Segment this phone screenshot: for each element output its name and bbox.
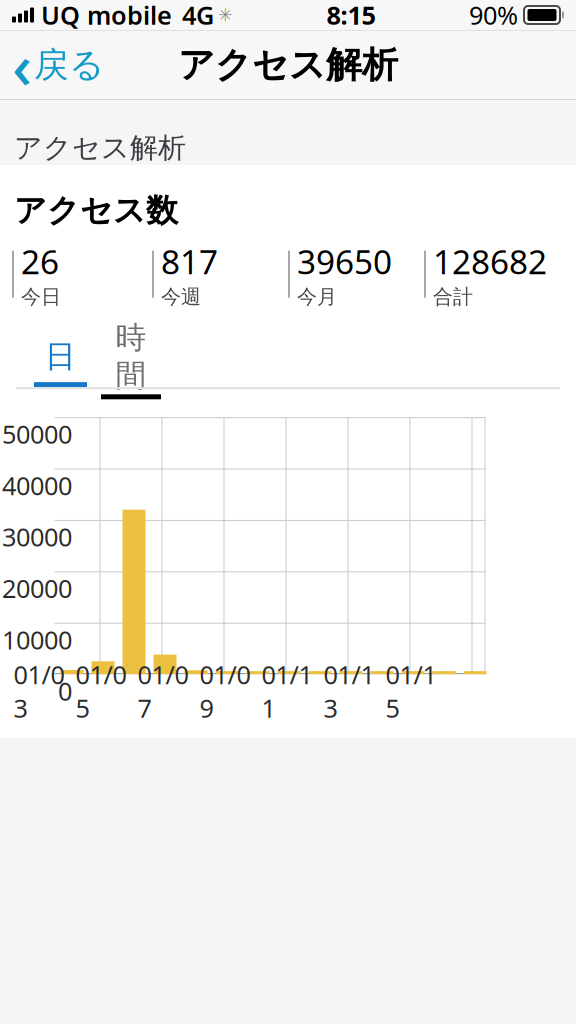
button[interactable]: 日 [34, 331, 87, 387]
staticText: 01/05 [75, 657, 126, 725]
staticText: 128682 [433, 239, 547, 284]
button[interactable]: ‹ [0, 33, 116, 97]
staticText: 今週 [161, 285, 201, 309]
staticText: 01/15 [385, 657, 436, 725]
staticText: 10000 [2, 623, 72, 656]
staticText: 0 [58, 674, 72, 708]
staticText: 01/09 [199, 657, 250, 725]
staticText: 39650 [297, 239, 392, 284]
staticText: 01/07 [137, 657, 188, 725]
staticText: 20000 [2, 571, 72, 605]
staticText: 01/03 [13, 657, 64, 725]
staticText: 817 [161, 239, 218, 284]
staticText: 4G [182, 0, 214, 32]
button[interactable]: 時間 [101, 331, 161, 387]
staticText: 時間 [115, 319, 146, 394]
staticText: ✳ [218, 5, 233, 25]
staticText: アクセス解析 [14, 131, 186, 165]
staticText: 01/11 [261, 657, 312, 725]
staticText: アクセス解析 [178, 43, 398, 87]
staticText: UQ mobile [41, 0, 172, 32]
staticText: アクセス数 [14, 191, 178, 230]
staticText: 日 [45, 338, 76, 375]
staticText: 50000 [2, 417, 72, 451]
staticText: 8:15 [326, 0, 375, 32]
staticText: 40000 [2, 468, 72, 502]
staticText: 30000 [2, 520, 72, 553]
staticText: 合計 [433, 285, 473, 309]
staticText: 今日 [21, 285, 61, 309]
staticText: 90% [469, 0, 518, 32]
staticText: ‹ [12, 24, 32, 106]
staticText: 01/13 [323, 657, 374, 725]
staticText: 26 [21, 239, 59, 284]
staticText: 戻る [34, 44, 104, 86]
staticText: 今月 [297, 285, 337, 309]
